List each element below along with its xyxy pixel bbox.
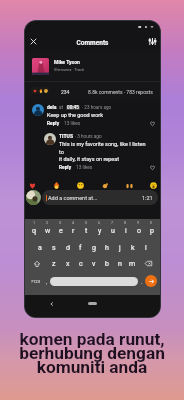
staticText: w — [45, 227, 51, 235]
staticText: · 3 hours ago — [75, 134, 102, 139]
button[interactable]: s — [47, 241, 61, 254]
staticText: at — [59, 105, 64, 110]
staticText: Comments — [25, 39, 160, 47]
staticText: 1:21 — [142, 195, 153, 201]
button[interactable]: 0 — [145, 221, 158, 237]
button[interactable]: h — [100, 241, 113, 254]
button[interactable]: n — [113, 257, 126, 270]
button[interactable]: Shift — [27, 257, 47, 270]
staticText: 7 — [111, 221, 114, 225]
button[interactable]: b — [100, 257, 113, 270]
button[interactable]: 7 — [106, 221, 119, 237]
staticText: c — [79, 260, 83, 268]
staticText: 13 likes — [76, 165, 93, 171]
staticText: b — [105, 260, 109, 268]
button[interactable]: React — [51, 180, 61, 190]
staticText: 13 likes — [64, 121, 81, 127]
button[interactable]: React — [27, 180, 37, 190]
button[interactable]: Close — [26, 34, 40, 48]
button[interactable]: React — [124, 180, 134, 190]
button[interactable]: Back — [49, 301, 55, 307]
button[interactable]: Sort comments — [145, 34, 159, 48]
staticText: z — [52, 260, 56, 268]
staticText: , — [46, 278, 48, 285]
staticText: q — [32, 227, 36, 235]
button[interactable]: dela — [32, 104, 156, 127]
staticText: komen pada runut, berhubung dengan komun… — [0, 329, 184, 377]
button[interactable]: , — [43, 274, 50, 288]
staticText: 3 — [59, 221, 62, 225]
button[interactable]: 9 — [132, 221, 145, 237]
staticText: . — [141, 278, 143, 285]
staticText: h — [105, 244, 109, 252]
button[interactable]: a — [33, 241, 47, 254]
button[interactable]: Home — [88, 302, 97, 305]
button[interactable]: v — [87, 257, 100, 270]
button[interactable]: Like — [149, 164, 156, 171]
staticText: · 23 hours ago — [82, 105, 112, 110]
button[interactable]: f — [74, 241, 87, 254]
staticText: r — [72, 227, 75, 235]
button[interactable]: 4 — [67, 221, 80, 237]
button[interactable]: Send — [145, 275, 157, 287]
button[interactable]: j — [113, 241, 126, 254]
button[interactable]: g — [87, 241, 100, 254]
staticText: 8 — [124, 221, 127, 225]
button[interactable]: React — [148, 180, 158, 190]
staticText: This is my favorite song, like I listen … — [59, 141, 146, 162]
staticText: v — [92, 260, 96, 268]
staticText: Reply — [59, 165, 72, 171]
staticText: dela — [47, 104, 57, 110]
staticText: k — [131, 244, 135, 252]
button[interactable]: . — [138, 274, 145, 288]
button[interactable]: l — [139, 241, 152, 254]
staticText: 234 — [61, 89, 70, 95]
staticText: 0 — [150, 221, 153, 225]
staticText: t — [85, 227, 88, 235]
button[interactable]: m — [126, 257, 139, 270]
staticText: o — [137, 227, 141, 235]
staticText: a — [38, 244, 42, 252]
button[interactable]: ?123 — [28, 274, 43, 288]
staticText: TITUS — [59, 133, 73, 139]
staticText: 1 — [33, 221, 36, 225]
staticText: 00:45 — [67, 105, 79, 110]
button[interactable]: k — [126, 241, 139, 254]
button[interactable]: z — [47, 257, 61, 270]
staticText: m — [129, 260, 136, 268]
staticText: f — [79, 244, 82, 252]
staticText: 9 — [137, 221, 140, 225]
staticText: 4 — [72, 221, 75, 225]
button[interactable]: 3 — [54, 221, 67, 237]
staticText: d — [66, 244, 70, 252]
staticText: Mike Tyson — [54, 59, 80, 65]
button[interactable]: 2 — [41, 221, 54, 237]
button[interactable]: React — [75, 180, 85, 190]
button[interactable]: Add a comment at... — [42, 190, 158, 205]
button[interactable]: Like — [149, 120, 156, 127]
button[interactable]: c — [74, 257, 87, 270]
staticText: j — [119, 244, 121, 252]
button[interactable]: d — [61, 241, 74, 254]
staticText: i — [125, 227, 127, 235]
button[interactable]: Backspace — [139, 257, 158, 270]
staticText: 6 — [98, 221, 101, 225]
button[interactable]: Space — [50, 277, 138, 286]
button[interactable]: React — [100, 180, 110, 190]
staticText: Shenseea · Track — [54, 67, 85, 72]
staticText: p — [150, 227, 154, 235]
button[interactable]: 5 — [80, 221, 93, 237]
staticText: 5 — [85, 221, 88, 225]
staticText: Keep up the good work — [47, 112, 104, 118]
button[interactable]: 1 — [27, 221, 41, 237]
staticText: l — [145, 244, 147, 252]
staticText: s — [52, 244, 56, 252]
button[interactable] — [25, 52, 160, 100]
button[interactable]: TITUS — [44, 133, 156, 171]
button[interactable]: x — [61, 257, 74, 270]
staticText: u — [111, 227, 115, 235]
button[interactable]: 6 — [93, 221, 106, 237]
button[interactable]: 8 — [119, 221, 132, 237]
staticText: y — [98, 227, 102, 235]
staticText: g — [92, 244, 96, 252]
